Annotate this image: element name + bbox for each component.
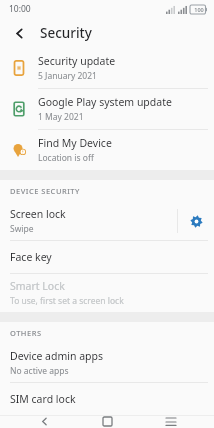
button[interactable]: Security update xyxy=(0,48,214,88)
staticText: Security xyxy=(40,24,92,42)
staticText: Google Play system update xyxy=(38,95,172,109)
button[interactable]: Screen lock xyxy=(0,202,177,240)
staticText: Screen lock xyxy=(10,207,66,221)
staticText: 10:00 xyxy=(9,3,31,15)
button[interactable]: Google Play system update xyxy=(0,89,214,129)
staticText: OTHERS xyxy=(10,328,42,338)
button[interactable]: Smart Lock xyxy=(0,274,214,312)
staticText: Face key xyxy=(10,250,52,264)
staticText: Device admin apps xyxy=(10,349,104,363)
staticText: 1 May 2021 xyxy=(38,111,84,123)
staticText: DEVICE SECURITY xyxy=(10,186,80,196)
staticText: Smart Lock xyxy=(10,279,65,293)
button[interactable]: Back xyxy=(7,21,31,45)
button[interactable]: Screen lock settings xyxy=(178,202,214,240)
staticText: SIM card lock xyxy=(10,392,76,406)
button[interactable]: Back xyxy=(24,415,64,428)
button[interactable]: Recent apps xyxy=(151,415,191,428)
button[interactable]: Home xyxy=(87,415,127,428)
staticText: Location is off xyxy=(38,152,94,164)
button[interactable]: SIM card lock xyxy=(0,383,214,415)
button[interactable]: Find My Device xyxy=(0,130,214,170)
staticText: To use, first set a screen lock xyxy=(10,295,124,307)
button[interactable]: Device admin apps xyxy=(0,344,214,382)
staticText: Swipe xyxy=(10,223,34,235)
staticText: 100 xyxy=(194,6,204,13)
staticText: No active apps xyxy=(10,365,69,377)
staticText: 5 January 2021 xyxy=(38,70,97,82)
staticText: Find My Device xyxy=(38,136,112,150)
button[interactable]: Face key xyxy=(0,241,214,273)
staticText: Security update xyxy=(38,54,116,68)
